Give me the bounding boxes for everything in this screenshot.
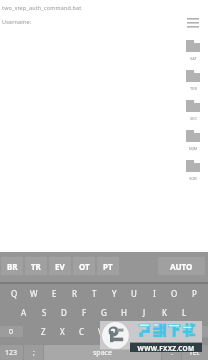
button[interactable]: W xyxy=(24,284,44,303)
button[interactable]: Menu xyxy=(187,18,199,28)
button[interactable]: C xyxy=(72,322,91,341)
button[interactable]: M xyxy=(148,322,167,341)
staticText: C xyxy=(79,326,85,337)
staticText: K xyxy=(162,307,167,318)
staticText: J xyxy=(143,307,146,318)
button[interactable]: U xyxy=(124,284,144,303)
button[interactable]: H xyxy=(114,303,134,322)
button[interactable]: AUTO xyxy=(158,257,205,275)
button[interactable]: V xyxy=(91,322,110,341)
button[interactable]: SOR xyxy=(186,160,200,181)
staticText: SEC xyxy=(190,116,197,121)
staticText: MJM xyxy=(189,146,198,151)
staticText: X xyxy=(60,326,65,337)
button[interactable]: Backspace xyxy=(170,326,208,337)
staticText: I xyxy=(153,288,156,299)
staticText: P xyxy=(192,288,197,299)
button[interactable]: OT xyxy=(73,257,95,275)
staticText: PT xyxy=(103,261,113,272)
button[interactable]: EV xyxy=(49,257,71,275)
button[interactable]: space xyxy=(44,345,161,360)
button[interactable]: P xyxy=(184,284,204,303)
button[interactable]: 0 xyxy=(0,326,23,337)
staticText: SOR xyxy=(189,176,197,181)
staticText: BR xyxy=(7,261,18,272)
staticText: space xyxy=(93,348,112,358)
button[interactable]: SAT xyxy=(186,40,200,61)
staticText: 0 xyxy=(9,327,14,337)
staticText: OT xyxy=(79,261,90,272)
staticText: R xyxy=(72,288,77,299)
button[interactable]: G xyxy=(94,303,114,322)
staticText: EV xyxy=(55,261,65,272)
staticText: W xyxy=(30,288,38,299)
button[interactable]: Z xyxy=(34,322,53,341)
staticText: V xyxy=(98,326,103,337)
staticText: TER xyxy=(190,86,197,91)
staticText: TR xyxy=(31,261,41,272)
button[interactable]: E xyxy=(44,284,64,303)
staticText: AUTO xyxy=(170,261,193,272)
staticText: U xyxy=(131,288,137,299)
button[interactable]: ret xyxy=(182,345,208,360)
staticText: L xyxy=(182,307,187,318)
staticText: H xyxy=(121,307,127,318)
button[interactable]: MJM xyxy=(186,130,200,151)
staticText: Y xyxy=(112,288,117,299)
button[interactable]: PT xyxy=(97,257,119,275)
button[interactable]: J xyxy=(134,303,154,322)
staticText: ret xyxy=(190,348,200,358)
button[interactable]: T xyxy=(84,284,104,303)
button[interactable]: Y xyxy=(104,284,124,303)
button[interactable]: A xyxy=(14,303,34,322)
button[interactable]: SEC xyxy=(186,100,200,121)
staticText: SAT xyxy=(190,56,197,61)
staticText: B xyxy=(117,326,123,337)
staticText: two_step_auth_command.bat xyxy=(2,4,82,11)
staticText: WWW.FXXZ.COM xyxy=(130,344,202,353)
staticText: S xyxy=(42,307,47,318)
staticText: ⌫ xyxy=(184,328,194,336)
button[interactable]: O xyxy=(164,284,184,303)
button[interactable]: R xyxy=(64,284,84,303)
button[interactable]: L xyxy=(174,303,194,322)
button[interactable]: S xyxy=(34,303,54,322)
staticText: E xyxy=(52,288,57,299)
staticText: A xyxy=(21,307,27,318)
button[interactable]: B xyxy=(110,322,129,341)
button[interactable]: K xyxy=(154,303,174,322)
staticText: O xyxy=(171,288,178,299)
button[interactable]: X xyxy=(53,322,72,341)
staticText: . xyxy=(171,348,173,358)
button[interactable]: ; xyxy=(24,345,43,360)
staticText: Username: xyxy=(2,18,32,25)
button[interactable]: TR xyxy=(25,257,47,275)
staticText: ; xyxy=(33,348,35,358)
staticText: 123 xyxy=(5,348,18,358)
staticText: F xyxy=(82,307,87,318)
button[interactable]: 123 xyxy=(0,345,23,360)
button[interactable]: BR xyxy=(1,257,23,275)
staticText: M xyxy=(154,326,162,337)
button[interactable]: N xyxy=(129,322,148,341)
staticText: N xyxy=(135,326,142,337)
staticText: D xyxy=(61,307,67,318)
button[interactable]: F xyxy=(74,303,94,322)
staticText: T xyxy=(92,288,97,299)
button[interactable]: D xyxy=(54,303,74,322)
button[interactable]: . xyxy=(162,345,181,360)
staticText: Q xyxy=(11,288,18,299)
button[interactable]: Q xyxy=(4,284,24,303)
staticText: Z xyxy=(41,326,46,337)
button[interactable]: I xyxy=(144,284,164,303)
staticText: G xyxy=(101,307,107,318)
button[interactable]: TER xyxy=(186,70,200,91)
